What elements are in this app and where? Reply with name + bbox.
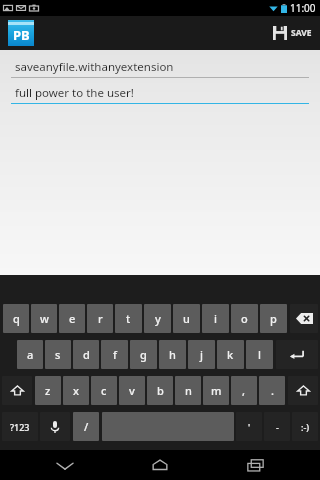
button[interactable]: full power to the user! [11,82,309,104]
button[interactable]: r [87,304,113,333]
button[interactable]: v [119,376,145,405]
staticText: o [241,311,248,326]
staticText: i [214,311,217,326]
staticText: h [169,347,176,362]
staticText: g [140,347,147,362]
staticText: saveanyfile.withanyextension [15,59,174,75]
staticText: k [227,347,234,362]
staticText: u [183,311,190,326]
button[interactable]: x [63,376,89,405]
staticText: 11:00 [290,1,316,15]
staticText: l [258,347,261,362]
staticText: j [200,347,203,362]
staticText: . [271,383,274,398]
button[interactable]: Shift [2,376,32,405]
staticText: y [155,311,161,326]
staticText: v [129,383,135,398]
staticText: e [69,311,76,326]
staticText: x [73,383,79,398]
staticText: , [242,383,246,398]
staticText: c [101,383,107,398]
staticText: n [185,383,192,398]
button[interactable]: - [264,412,290,441]
button[interactable]: :-) [292,412,318,441]
button[interactable]: d [73,340,99,369]
staticText: m [211,383,222,398]
staticText: b [157,383,164,398]
button[interactable]: l [246,340,273,369]
button[interactable]: Hide keyboard [35,450,95,480]
button[interactable]: Enter [276,340,318,369]
staticText: t [126,311,131,326]
button[interactable]: Recent apps [225,450,285,480]
staticText: / [84,419,89,434]
button[interactable]: w [31,304,57,333]
button[interactable]: i [202,304,229,333]
staticText: ' [248,421,251,433]
button[interactable]: q [3,304,29,333]
staticText: ?123 [10,421,30,433]
button[interactable]: ' [236,412,262,441]
button[interactable]: o [231,304,258,333]
button[interactable]: n [175,376,201,405]
button[interactable]: SAVE [273,16,312,50]
button[interactable]: / [73,412,99,441]
staticText: SAVE [291,27,312,39]
button[interactable]: f [101,340,128,369]
button[interactable]: t [115,304,142,333]
button[interactable]: saveanyfile.withanyextension [11,56,309,78]
staticText: full power to the user! [15,85,134,101]
button[interactable]: . [259,376,285,405]
button[interactable]: , [231,376,257,405]
staticText: :-) [301,421,310,433]
staticText: w [40,311,49,326]
button[interactable]: h [159,340,186,369]
button[interactable]: m [203,376,229,405]
staticText: f [113,347,117,362]
button[interactable]: p [260,304,287,333]
staticText: p [270,311,277,326]
button[interactable]: k [217,340,244,369]
button[interactable]: u [173,304,200,333]
staticText: z [45,383,51,398]
button[interactable]: z [35,376,61,405]
button[interactable]: j [188,340,215,369]
button[interactable]: Home [130,450,190,480]
button[interactable]: Voice input [40,412,70,441]
staticText: d [83,347,90,362]
button[interactable]: Shift [288,376,318,405]
staticText: s [55,347,61,362]
staticText: a [27,347,34,362]
button[interactable]: a [17,340,43,369]
button[interactable]: App home [8,20,34,46]
button[interactable]: s [45,340,71,369]
button[interactable]: ?123 [2,412,38,441]
button[interactable]: c [91,376,117,405]
button[interactable]: g [130,340,157,369]
staticText: PB [13,26,30,44]
staticText: r [98,311,103,326]
button[interactable]: b [147,376,173,405]
button[interactable]: y [144,304,171,333]
button[interactable]: Backspace [290,304,318,333]
staticText: q [13,311,20,326]
button[interactable]: e [59,304,85,333]
staticText: - [276,421,279,433]
